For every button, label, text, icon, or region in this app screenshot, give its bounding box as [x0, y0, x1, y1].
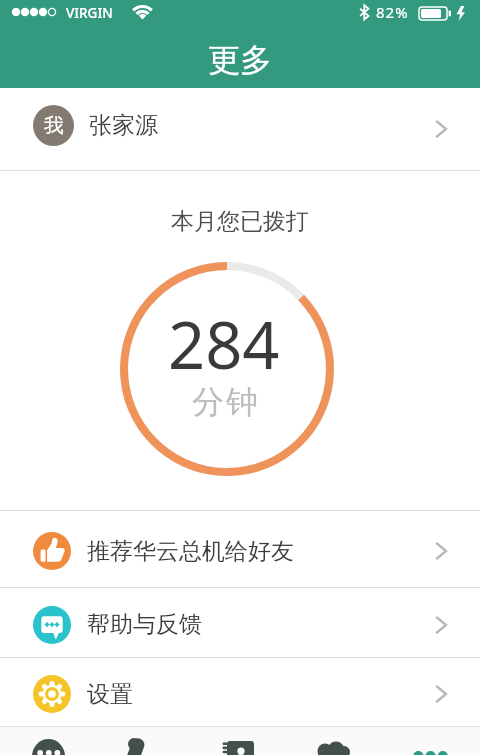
button[interactable]: 推荐华云总机给好友	[0, 511, 480, 587]
staticText: 推荐华云总机给好友	[87, 537, 294, 566]
button[interactable]	[288, 727, 384, 755]
staticText: 82%	[376, 2, 409, 22]
staticText: 帮助与反馈	[87, 610, 202, 639]
button[interactable]: 帮助与反馈	[0, 588, 480, 657]
staticText: 分钟	[191, 382, 259, 422]
button[interactable]	[96, 727, 192, 755]
button[interactable]	[384, 727, 480, 755]
button[interactable]: 设置	[0, 658, 480, 726]
staticText: 284	[168, 300, 280, 389]
button[interactable]	[192, 727, 288, 755]
staticText: 更多	[208, 40, 272, 80]
button[interactable]	[0, 727, 96, 755]
staticText: 张家源	[89, 111, 158, 140]
staticText: 本月您已拨打	[171, 207, 309, 236]
button[interactable]: 我	[0, 88, 480, 170]
staticText: 我	[44, 113, 64, 138]
staticText: 设置	[87, 680, 133, 709]
staticText: VIRGIN	[66, 4, 113, 22]
